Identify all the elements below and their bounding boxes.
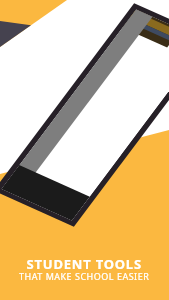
button[interactable]: Student Tools promo (0, 0, 169, 300)
